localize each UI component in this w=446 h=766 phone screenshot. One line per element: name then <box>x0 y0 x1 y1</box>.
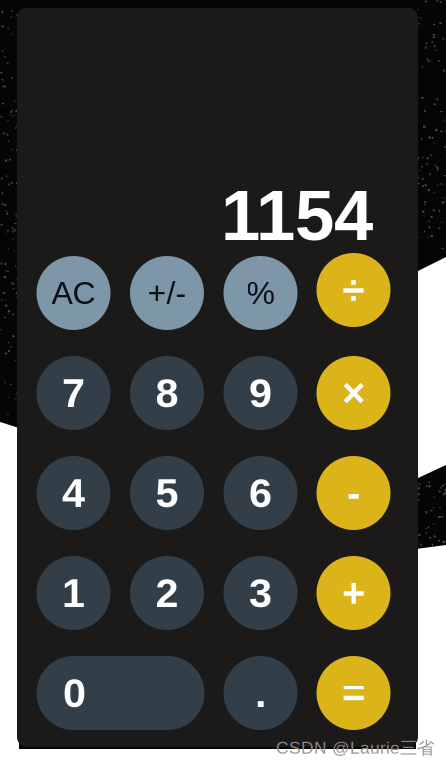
staticText: 0 <box>63 670 86 716</box>
button[interactable]: . <box>223 656 297 730</box>
button[interactable]: + <box>316 556 390 630</box>
button[interactable]: % <box>223 256 297 330</box>
button[interactable]: 3 <box>223 556 297 630</box>
staticText: + <box>342 571 365 615</box>
button[interactable]: 6 <box>223 456 297 530</box>
staticText: CSDN @Laurie三省 <box>276 737 434 759</box>
button[interactable]: - <box>316 456 390 530</box>
button[interactable]: 7 <box>36 356 110 430</box>
button[interactable]: = <box>316 656 390 730</box>
button[interactable]: 5 <box>130 456 204 530</box>
button[interactable]: 8 <box>130 356 204 430</box>
button[interactable]: × <box>316 356 390 430</box>
button[interactable]: 4 <box>36 456 110 530</box>
staticText: ÷ <box>342 268 364 312</box>
staticText: AC <box>51 275 95 311</box>
staticText: 7 <box>62 370 85 416</box>
button[interactable]: +/- <box>130 256 204 330</box>
staticText: = <box>342 671 365 715</box>
staticText: 2 <box>155 570 178 616</box>
staticText: × <box>342 371 365 415</box>
button[interactable]: 0 <box>36 656 204 730</box>
staticText: 1154 <box>221 176 373 255</box>
button[interactable]: ÷ <box>316 253 390 327</box>
staticText: 4 <box>62 470 85 516</box>
staticText: - <box>347 471 360 515</box>
staticText: % <box>246 275 274 311</box>
staticText: 5 <box>155 470 178 516</box>
staticText: . <box>255 670 266 716</box>
staticText: 3 <box>249 570 272 616</box>
button[interactable]: 9 <box>223 356 297 430</box>
staticText: 1 <box>62 570 85 616</box>
button[interactable]: 2 <box>130 556 204 630</box>
staticText: 8 <box>155 370 178 416</box>
button[interactable]: 1 <box>36 556 110 630</box>
staticText: 9 <box>249 370 272 416</box>
staticText: 6 <box>249 470 272 516</box>
staticText: +/- <box>147 275 186 311</box>
button[interactable]: AC <box>36 256 110 330</box>
